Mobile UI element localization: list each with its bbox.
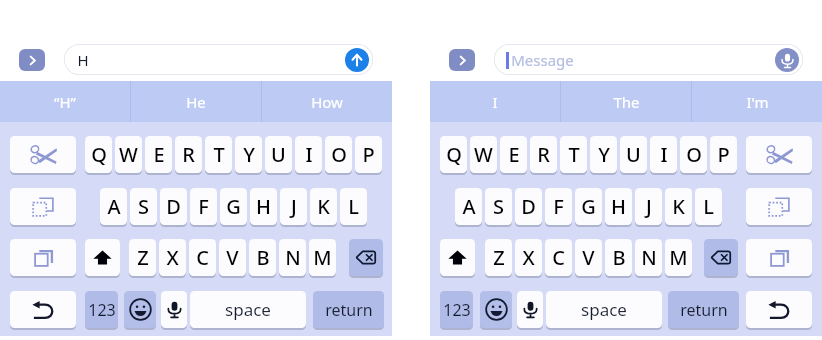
button[interactable]: Backspace <box>704 239 738 276</box>
button[interactable]: V <box>219 239 246 276</box>
button[interactable]: K <box>665 188 692 225</box>
button[interactable]: Cut <box>746 136 812 173</box>
button[interactable]: R <box>175 136 202 173</box>
button[interactable]: Undo <box>746 291 812 328</box>
button[interactable]: A <box>455 188 482 225</box>
button[interactable]: H <box>64 44 373 75</box>
button[interactable]: Shift <box>440 239 475 276</box>
staticText: G <box>581 193 596 220</box>
button[interactable]: B <box>249 239 276 276</box>
button[interactable]: How <box>262 81 392 122</box>
button[interactable]: Message <box>494 44 803 75</box>
button[interactable]: 123 <box>440 291 473 328</box>
button[interactable]: S <box>130 188 157 225</box>
button[interactable]: N <box>635 239 662 276</box>
button[interactable]: C <box>545 239 572 276</box>
button[interactable]: Copy <box>10 239 76 276</box>
staticText: I <box>305 141 313 168</box>
button[interactable]: Expand toolbar <box>19 49 45 71</box>
button[interactable]: Copy <box>746 239 812 276</box>
button[interactable]: U <box>265 136 292 173</box>
button[interactable]: E <box>500 136 527 173</box>
button[interactable]: Y <box>235 136 262 173</box>
button[interactable]: A <box>100 188 127 225</box>
button[interactable]: O <box>325 136 352 173</box>
button[interactable]: H <box>605 188 632 225</box>
button[interactable]: Z <box>485 239 512 276</box>
button[interactable]: I <box>430 81 560 122</box>
button[interactable]: L <box>340 188 367 225</box>
button[interactable]: J <box>280 188 307 225</box>
button[interactable]: S <box>485 188 512 225</box>
button[interactable]: I <box>650 136 677 173</box>
button[interactable]: The <box>561 81 691 122</box>
button[interactable]: K <box>310 188 337 225</box>
button[interactable]: G <box>220 188 247 225</box>
button[interactable]: P <box>710 136 737 173</box>
button[interactable]: Cut <box>10 136 76 173</box>
staticText: Q <box>91 141 107 168</box>
button[interactable]: He <box>131 81 261 122</box>
button[interactable]: W <box>115 136 142 173</box>
button[interactable]: Z <box>129 239 156 276</box>
button[interactable]: space <box>546 291 662 328</box>
button[interactable]: Q <box>440 136 467 173</box>
button[interactable]: Expand toolbar <box>449 49 475 71</box>
button[interactable]: L <box>695 188 722 225</box>
staticText: Z <box>493 244 505 271</box>
button[interactable]: Q <box>85 136 112 173</box>
button[interactable]: Undo <box>10 291 76 328</box>
button[interactable]: Emoji <box>480 291 512 328</box>
button[interactable]: M <box>665 239 692 276</box>
staticText: O <box>331 141 347 168</box>
button[interactable]: R <box>530 136 557 173</box>
button[interactable]: X <box>159 239 186 276</box>
button[interactable]: I'm <box>692 81 822 122</box>
staticText: K <box>672 193 685 220</box>
button[interactable]: X <box>515 239 542 276</box>
button[interactable]: D <box>160 188 187 225</box>
button[interactable]: Send <box>345 48 369 72</box>
button[interactable]: Voice input <box>161 291 187 328</box>
staticText: R <box>537 141 550 168</box>
button[interactable]: I <box>295 136 322 173</box>
button[interactable]: Paste <box>746 188 812 225</box>
button[interactable]: F <box>190 188 217 225</box>
staticText: I <box>660 141 668 168</box>
button[interactable]: Voice dictation <box>775 48 799 72</box>
button[interactable]: Backspace <box>349 239 383 276</box>
button[interactable]: C <box>189 239 216 276</box>
button[interactable]: G <box>575 188 602 225</box>
button[interactable]: F <box>545 188 572 225</box>
button[interactable]: W <box>470 136 497 173</box>
button[interactable]: H <box>250 188 277 225</box>
button[interactable]: O <box>680 136 707 173</box>
staticText: Z <box>137 244 149 271</box>
staticText: O <box>686 141 702 168</box>
button[interactable]: B <box>605 239 632 276</box>
button[interactable]: Shift <box>85 239 120 276</box>
staticText: P <box>362 141 375 168</box>
button[interactable]: M <box>309 239 336 276</box>
button[interactable]: N <box>279 239 306 276</box>
button[interactable]: D <box>515 188 542 225</box>
button[interactable]: V <box>575 239 602 276</box>
button[interactable]: return <box>313 291 384 328</box>
button[interactable]: J <box>635 188 662 225</box>
button[interactable]: E <box>145 136 172 173</box>
button[interactable]: T <box>205 136 232 173</box>
staticText: E <box>508 141 520 168</box>
button[interactable]: U <box>620 136 647 173</box>
button[interactable]: Y <box>590 136 617 173</box>
button[interactable]: space <box>190 291 306 328</box>
button[interactable]: P <box>355 136 382 173</box>
button[interactable]: 123 <box>85 291 118 328</box>
button[interactable]: Paste <box>10 188 76 225</box>
button[interactable]: T <box>560 136 587 173</box>
staticText: S <box>493 193 504 220</box>
button[interactable]: “H” <box>0 81 130 122</box>
staticText: X <box>166 244 179 271</box>
button[interactable]: Voice input <box>517 291 543 328</box>
button[interactable]: Emoji <box>124 291 156 328</box>
button[interactable]: return <box>668 291 739 328</box>
